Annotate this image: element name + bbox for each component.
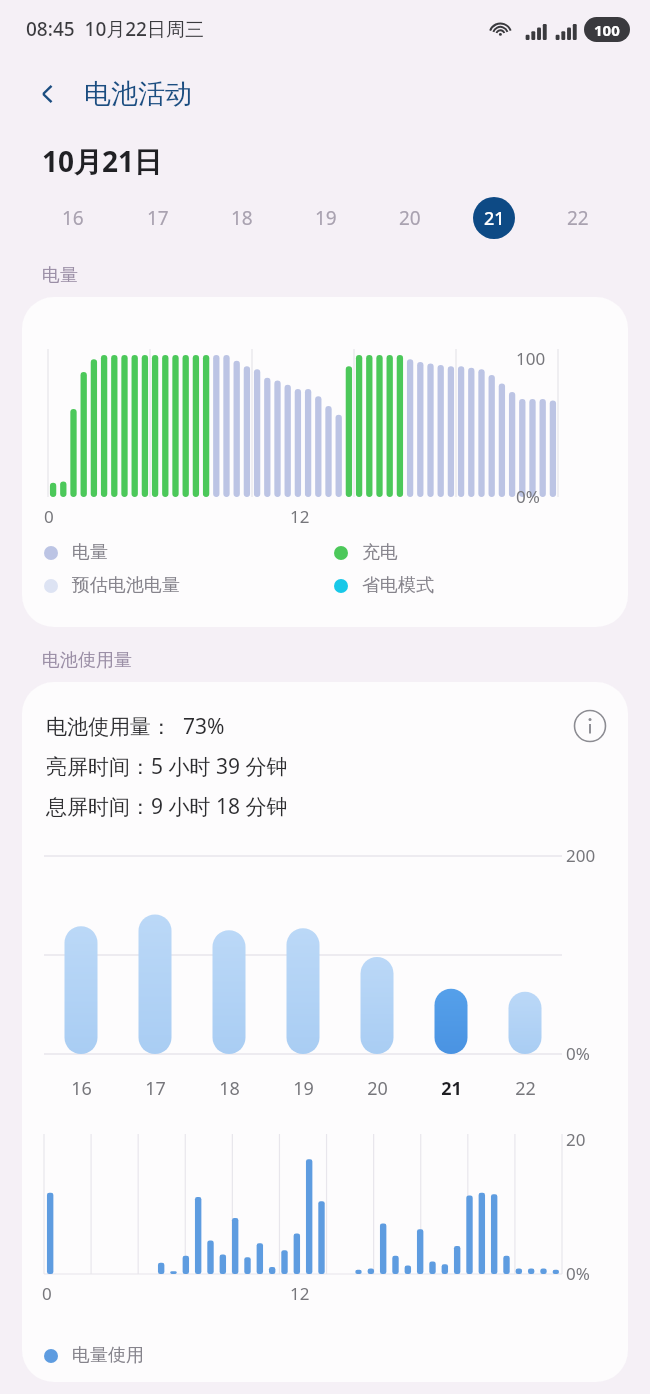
staticText: 12 — [290, 1282, 310, 1305]
staticText: 0 — [42, 1282, 52, 1305]
staticText: 22 — [567, 205, 589, 231]
button[interactable]: Back — [26, 72, 70, 116]
staticText: 10月21日 — [42, 142, 163, 180]
staticText: 20 — [566, 1128, 586, 1151]
staticText: 0% — [566, 1042, 590, 1065]
staticText: 0% — [566, 1262, 590, 1285]
button[interactable]: 22 — [536, 192, 620, 244]
staticText: 22 — [515, 1076, 536, 1101]
staticText: 电量 — [42, 264, 78, 287]
staticText: 19 — [315, 205, 337, 231]
staticText: 17 — [145, 1076, 166, 1101]
staticText: 16 — [62, 205, 84, 231]
staticText: 20 — [367, 1076, 388, 1101]
staticText: 200 — [566, 844, 596, 867]
staticText: 0 — [44, 505, 54, 528]
button[interactable]: 100 — [22, 297, 628, 627]
staticText: 电池使用量： 73% — [46, 712, 225, 741]
staticText: 18 — [219, 1076, 240, 1101]
staticText: 0% — [516, 485, 540, 508]
staticText: 12 — [290, 505, 310, 528]
staticText: 电量 — [72, 541, 108, 564]
staticText: 省电模式 — [362, 574, 434, 597]
button[interactable]: Info — [566, 702, 614, 750]
button[interactable]: 19 — [284, 192, 368, 244]
staticText: 20 — [399, 205, 421, 231]
button[interactable]: 21 — [452, 192, 536, 244]
staticText: 100 — [516, 347, 546, 370]
staticText: 08:45 10月22日周三 — [26, 16, 204, 42]
button[interactable]: 16 — [30, 192, 115, 244]
staticText: 17 — [147, 205, 169, 231]
button[interactable]: 20 — [368, 192, 452, 244]
staticText: 100 — [594, 20, 620, 40]
staticText: 电池使用量 — [42, 649, 132, 672]
staticText: 19 — [293, 1076, 314, 1101]
button[interactable]: 17 — [115, 192, 200, 244]
button[interactable]: 18 — [200, 192, 284, 244]
staticText: 21 — [441, 1076, 462, 1101]
staticText: 电池活动 — [84, 77, 192, 111]
staticText: 亮屏时间：5 小时 39 分钟 — [46, 752, 288, 781]
staticText: 16 — [71, 1076, 92, 1101]
staticText: 电量使用 — [72, 1344, 144, 1367]
staticText: 21 — [484, 206, 505, 231]
staticText: 18 — [231, 205, 253, 231]
staticText: 息屏时间：9 小时 18 分钟 — [46, 792, 288, 821]
staticText: 充电 — [362, 541, 398, 564]
staticText: 预估电池电量 — [72, 574, 180, 597]
